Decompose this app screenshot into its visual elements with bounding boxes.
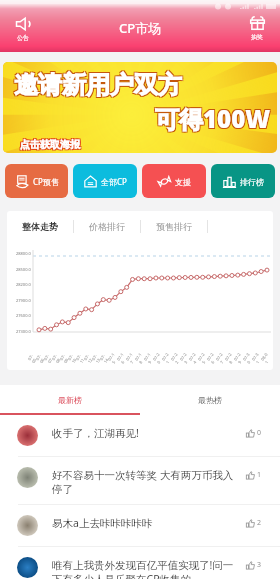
staticText: 邀请新用户双方 bbox=[13, 69, 181, 99]
button[interactable]: 整体走势 bbox=[7, 211, 73, 242]
button[interactable]: CP预售 bbox=[5, 164, 68, 198]
staticText: 07-10 bbox=[67, 352, 79, 364]
staticText: 07-28 bbox=[224, 351, 237, 364]
staticText: 28200.0 bbox=[16, 282, 31, 287]
staticText: 07-09 bbox=[59, 352, 71, 364]
staticText: 07-22 bbox=[170, 351, 183, 364]
button[interactable]: 价格排行 bbox=[74, 211, 140, 242]
staticText: 07-12 bbox=[83, 352, 95, 364]
staticText: 07-05 bbox=[27, 352, 39, 364]
staticText: 07-08 bbox=[51, 352, 63, 364]
staticText: 0 bbox=[257, 428, 262, 438]
staticText: 28800.0 bbox=[16, 251, 31, 256]
staticText: 排行榜 bbox=[240, 177, 264, 187]
staticText: 07-17 bbox=[125, 351, 138, 364]
button[interactable]: 预售排行 bbox=[141, 211, 207, 242]
staticText: 07-25 bbox=[197, 351, 210, 364]
button[interactable]: 邀请新用户双方 bbox=[3, 62, 277, 153]
staticText: 预售排行 bbox=[156, 221, 192, 232]
staticText: 邀请新用户双方 bbox=[15, 71, 183, 101]
staticText: 点击获取海报 bbox=[21, 137, 81, 150]
staticText: 最热榜 bbox=[198, 395, 222, 405]
staticText: 可得100W bbox=[154, 103, 270, 136]
staticText: 07-21 bbox=[161, 351, 174, 364]
staticText: 3 bbox=[257, 560, 262, 570]
staticText: 邀请新用户双方 bbox=[15, 69, 183, 99]
button[interactable]: 抽奖 bbox=[240, 15, 274, 41]
button[interactable]: 支援 bbox=[142, 164, 206, 198]
staticText: 2 bbox=[257, 518, 262, 528]
staticText: 07-30 bbox=[242, 351, 255, 364]
staticText: 1 bbox=[257, 470, 262, 480]
staticText: 07-15 bbox=[107, 351, 120, 364]
staticText: 08-01 bbox=[260, 351, 273, 364]
staticText: 07-18 bbox=[134, 351, 147, 364]
staticText: 支援 bbox=[175, 177, 191, 187]
staticText: 27900.0 bbox=[16, 298, 31, 303]
button[interactable]: 公告 bbox=[6, 15, 40, 42]
staticText: 最新榜 bbox=[58, 395, 82, 405]
staticText: 点击获取海报 bbox=[21, 139, 81, 152]
button[interactable]: 最热榜 bbox=[140, 385, 280, 415]
staticText: 公告 bbox=[17, 34, 29, 42]
button[interactable]: 唯有上我贵外发现百亿平值实现了!问一下有多少人是乐聚在CP收集的... bbox=[0, 547, 280, 587]
button[interactable]: 点赞 bbox=[246, 518, 262, 528]
staticText: 07-20 bbox=[152, 351, 165, 364]
staticText: 可得100W bbox=[154, 101, 270, 134]
staticText: 07-27 bbox=[215, 351, 228, 364]
staticText: 点击获取海报 bbox=[20, 138, 80, 151]
staticText: 邀请新用户双方 bbox=[14, 70, 182, 100]
button[interactable]: 全部CP bbox=[73, 164, 137, 198]
button[interactable]: 易木a上去咔咔咔咔咔 bbox=[0, 505, 280, 546]
staticText: 07-14 bbox=[99, 352, 111, 364]
staticText: 07-31 bbox=[251, 351, 264, 364]
staticText: 07-16 bbox=[116, 351, 129, 364]
staticText: 整体走势 bbox=[22, 221, 58, 232]
staticText: 07-07 bbox=[43, 352, 55, 364]
staticText: 07-24 bbox=[188, 351, 201, 364]
button[interactable]: 点赞 bbox=[246, 428, 262, 438]
button[interactable]: 收手了，江湖再见! bbox=[0, 415, 280, 456]
staticText: 全部CP bbox=[101, 176, 127, 187]
staticText: 07-06 bbox=[35, 352, 47, 364]
staticText: 27300.0 bbox=[16, 329, 31, 334]
staticText: 价格排行 bbox=[89, 221, 125, 232]
staticText: 可得100W bbox=[156, 103, 272, 136]
staticText: 07-13 bbox=[91, 352, 103, 364]
staticText: 07-26 bbox=[206, 351, 219, 364]
staticText: 07-29 bbox=[233, 351, 246, 364]
staticText: 07-19 bbox=[143, 351, 156, 364]
button[interactable]: 排行榜 bbox=[211, 164, 275, 198]
staticText: 抽奖 bbox=[251, 33, 263, 41]
staticText: 可得100W bbox=[156, 101, 272, 134]
staticText: 27600.0 bbox=[16, 313, 31, 318]
staticText: 邀请新用户双方 bbox=[13, 71, 181, 101]
staticText: CP预售 bbox=[33, 176, 59, 187]
staticText: 可得100W bbox=[155, 102, 271, 135]
staticText: 点击获取海报 bbox=[19, 137, 79, 150]
staticText: 收手了，江湖再见! bbox=[52, 426, 242, 440]
button[interactable]: 点赞 bbox=[246, 470, 262, 480]
staticText: 07-23 bbox=[179, 351, 192, 364]
button[interactable]: 最新榜 bbox=[0, 385, 140, 415]
staticText: CP市场 bbox=[119, 19, 162, 37]
staticText: 28500.0 bbox=[16, 267, 31, 272]
button[interactable]: 好不容易十一次转等奖 大有两万币我入停了 bbox=[0, 457, 280, 504]
button[interactable]: 点赞 bbox=[246, 560, 262, 570]
staticText: 唯有上我贵外发现百亿平值实现了!问一下有多少人是乐聚在CP收集的... bbox=[52, 558, 242, 579]
staticText: 07-11 bbox=[75, 352, 87, 364]
staticText: 点击获取海报 bbox=[19, 139, 79, 152]
staticText: 易木a上去咔咔咔咔咔 bbox=[52, 516, 242, 530]
staticText: 好不容易十一次转等奖 大有两万币我入停了 bbox=[52, 468, 242, 496]
